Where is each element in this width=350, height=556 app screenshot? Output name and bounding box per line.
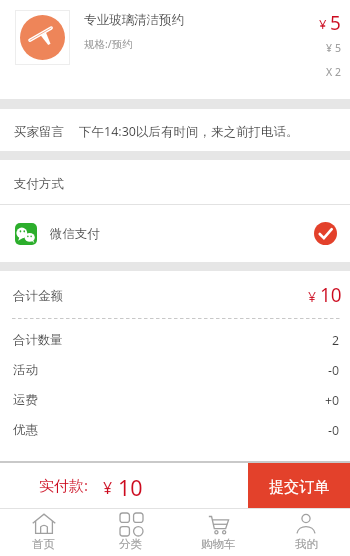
staticText: 10 xyxy=(118,473,143,502)
staticText: 支付方式 xyxy=(14,176,64,192)
staticText: 提交订单 xyxy=(269,478,329,497)
staticText: 合计数量 xyxy=(13,332,63,348)
staticText: ¥ xyxy=(308,287,317,306)
staticText: ¥ xyxy=(103,477,113,499)
staticText: 我的 xyxy=(295,537,318,551)
staticText: ¥ xyxy=(326,41,333,55)
staticText: 2 xyxy=(332,332,340,349)
staticText: 买家留言 xyxy=(14,124,64,140)
staticText: 分类 xyxy=(119,537,142,551)
staticText: ¥ xyxy=(319,15,327,33)
button[interactable]: 提交订单 xyxy=(248,463,350,508)
staticText: 首页 xyxy=(32,537,55,551)
staticText: 合计金额 xyxy=(13,288,63,304)
staticText: 优惠 xyxy=(13,422,38,438)
staticText: X 2 xyxy=(326,65,341,79)
staticText: -0 xyxy=(328,422,340,439)
button[interactable]: 分类 xyxy=(87,509,174,556)
button[interactable]: 首页 xyxy=(0,509,87,556)
staticText: 5 xyxy=(330,10,341,36)
staticText: 10 xyxy=(320,282,342,308)
staticText: 运费 xyxy=(13,392,38,408)
button[interactable]: 微信支付 xyxy=(0,205,350,262)
staticText: 专业玻璃清洁预约 xyxy=(84,12,184,28)
staticText: 购物车 xyxy=(201,537,236,551)
button[interactable]: 购物车 xyxy=(174,509,262,556)
other: Selected xyxy=(314,222,337,245)
staticText: 5 xyxy=(335,41,342,55)
staticText: 实付款: xyxy=(39,475,89,495)
staticText: 规格:/预约 xyxy=(84,37,133,51)
staticText: +0 xyxy=(325,392,340,409)
staticText: 微信支付 xyxy=(50,226,100,242)
staticText: 下午14:30以后有时间，来之前打电话。 xyxy=(79,123,299,140)
staticText: 活动 xyxy=(13,362,38,378)
staticText: -0 xyxy=(328,362,340,379)
button[interactable]: 我的 xyxy=(262,509,350,556)
